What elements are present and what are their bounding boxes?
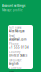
staticText: +1 555 0134 [9,46,29,49]
staticText: Language [9,58,22,62]
staticText: alex@mail.com [9,38,26,41]
staticText: USD [9,70,14,72]
staticText: Manage profile [2,8,23,12]
staticText: Full name [9,26,22,29]
staticText: United States [9,54,27,57]
staticText: Alex Morgan [9,29,25,33]
staticText: Phone [9,42,19,46]
staticText: English [9,62,19,65]
staticText: Email [9,34,15,38]
staticText: Country [9,50,20,54]
staticText: Account settings [2,4,25,7]
staticText: Currency [9,66,21,70]
